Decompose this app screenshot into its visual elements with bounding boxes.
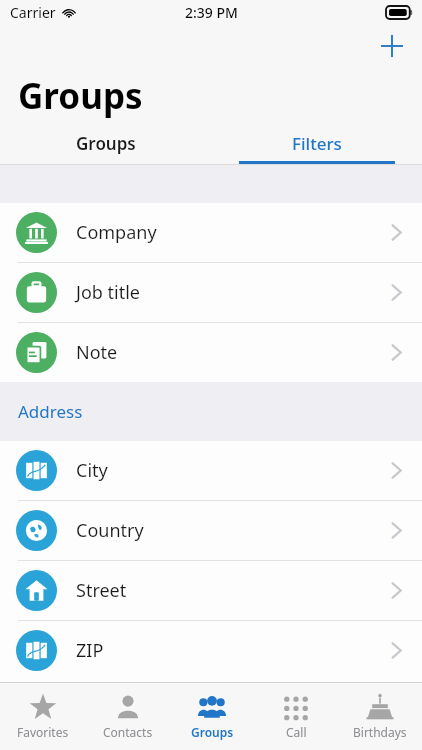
button[interactable]: Birthdays xyxy=(338,683,422,750)
button[interactable]: Country xyxy=(0,501,422,560)
button[interactable]: City xyxy=(0,441,422,500)
staticText: Call xyxy=(286,724,307,740)
staticText: Carrier xyxy=(10,3,56,22)
button[interactable]: Add group xyxy=(370,24,414,68)
button[interactable]: Call xyxy=(254,683,338,750)
staticText: Job title xyxy=(76,280,140,305)
staticText: Company xyxy=(76,220,157,245)
staticText: Street xyxy=(76,578,127,603)
staticText: Note xyxy=(76,340,118,365)
staticText: ZIP xyxy=(76,638,104,663)
staticText: Filters xyxy=(292,132,342,155)
button[interactable]: Groups xyxy=(0,123,211,164)
staticText: Favorites xyxy=(17,724,69,740)
button[interactable]: Note xyxy=(0,323,422,382)
staticText: Groups xyxy=(18,72,143,120)
button[interactable]: Contacts xyxy=(85,683,170,750)
button[interactable]: Groups xyxy=(170,683,254,750)
button[interactable]: Favorites xyxy=(0,683,85,750)
button[interactable]: Street xyxy=(0,561,422,620)
staticText: Birthdays xyxy=(353,724,407,740)
button[interactable]: Filters xyxy=(211,123,422,164)
staticText: 2:39 PM xyxy=(185,3,238,22)
staticText: Contacts xyxy=(103,724,153,740)
staticText: Country xyxy=(76,518,144,543)
staticText: Groups xyxy=(76,132,136,155)
staticText: Groups xyxy=(191,724,234,740)
staticText: Address xyxy=(18,400,83,423)
staticText: City xyxy=(76,458,108,483)
button[interactable]: Job title xyxy=(0,263,422,322)
button[interactable]: ZIP xyxy=(0,621,422,680)
button[interactable]: Company xyxy=(0,203,422,262)
